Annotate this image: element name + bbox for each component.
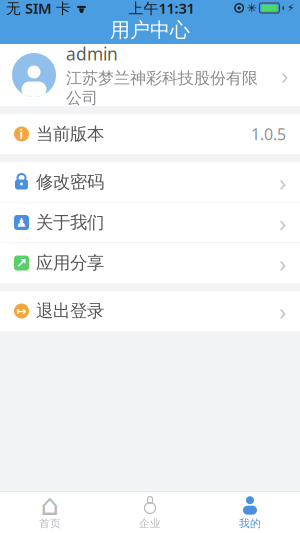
staticText: ⌂ [40, 488, 59, 522]
staticText: › [279, 207, 286, 238]
staticText: ✳ [246, 1, 256, 15]
staticText: › [279, 166, 286, 198]
button[interactable]: ↗ [0, 243, 300, 283]
button[interactable]: 我的 [200, 492, 300, 533]
staticText: 修改密码 [36, 171, 104, 193]
staticText: › [279, 247, 286, 279]
staticText: 无 SIM 卡 [6, 0, 71, 18]
staticText: 应用分享 [36, 252, 104, 274]
staticText: 江苏梦兰神彩科技股份有限公司 [66, 68, 258, 108]
staticText: ↦ [16, 304, 26, 318]
button[interactable]: 修改密码 [0, 162, 300, 202]
staticText: › [279, 295, 286, 327]
staticText: ⚡︎ [287, 2, 294, 14]
staticText: 退出登录 [36, 300, 104, 322]
button[interactable]: i [0, 114, 300, 154]
staticText: 当前版本 [36, 123, 104, 145]
staticText: 首页 [39, 517, 61, 530]
staticText: 上午11:31 [128, 0, 194, 18]
staticText: i [19, 126, 23, 142]
button[interactable]: ♟ [0, 202, 300, 242]
staticText: 1.0.5 [251, 123, 286, 145]
button[interactable]: ⌂ [0, 492, 100, 533]
staticText: 我的 [239, 517, 261, 530]
staticText: 企业 [139, 517, 161, 530]
staticText: admin [66, 42, 118, 65]
button[interactable]: 企业 [100, 492, 200, 533]
button[interactable]: admin [0, 44, 300, 106]
staticText: ♟ [16, 216, 27, 229]
staticText: 关于我们 [36, 212, 104, 233]
button[interactable]: ↦ [0, 291, 300, 331]
staticText: ↗ [16, 255, 27, 270]
staticText: 用户中心 [110, 18, 190, 42]
staticText: › [281, 59, 288, 91]
